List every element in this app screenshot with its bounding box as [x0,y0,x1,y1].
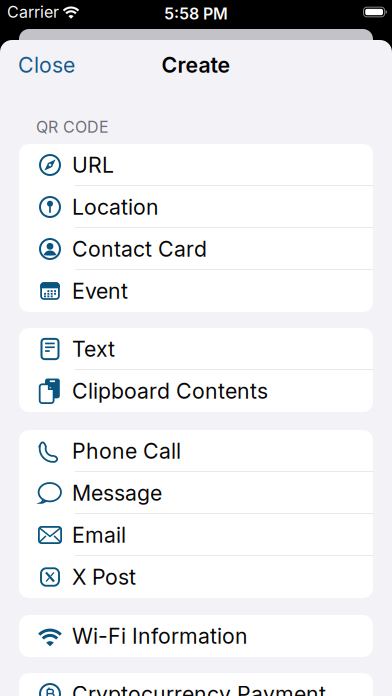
staticText: Clipboard Contents [72,378,268,404]
button[interactable]: Wi-Fi Information [19,615,373,657]
staticText: X Post [72,564,136,590]
button[interactable]: Phone Call [19,430,373,472]
staticText: Create [161,52,230,78]
button[interactable]: Text [19,328,373,370]
button[interactable]: Event [19,270,373,312]
staticText: Phone Call [72,438,181,464]
staticText: Location [72,194,159,220]
staticText: Message [72,480,162,506]
staticText: Cryptocurrency Payment [72,681,326,696]
button[interactable]: Cryptocurrency Payment [19,673,373,696]
staticText: Carrier [7,2,59,22]
staticText: Event [72,278,128,304]
button[interactable]: Close [18,52,75,78]
staticText: Close [18,52,75,78]
staticText: Contact Card [72,236,207,262]
button[interactable]: URL [19,144,373,186]
button[interactable]: X Post [19,556,373,598]
staticText: QR CODE [36,117,109,137]
button[interactable]: Clipboard Contents [19,370,373,412]
staticText: URL [72,152,114,178]
staticText: 5:58 PM [164,4,228,23]
button[interactable]: Message [19,472,373,514]
staticText: Text [72,336,115,362]
button[interactable]: Contact Card [19,228,373,270]
staticText: Wi-Fi Information [72,623,248,649]
button[interactable]: Location [19,186,373,228]
button[interactable]: Email [19,514,373,556]
staticText: Email [72,522,126,548]
